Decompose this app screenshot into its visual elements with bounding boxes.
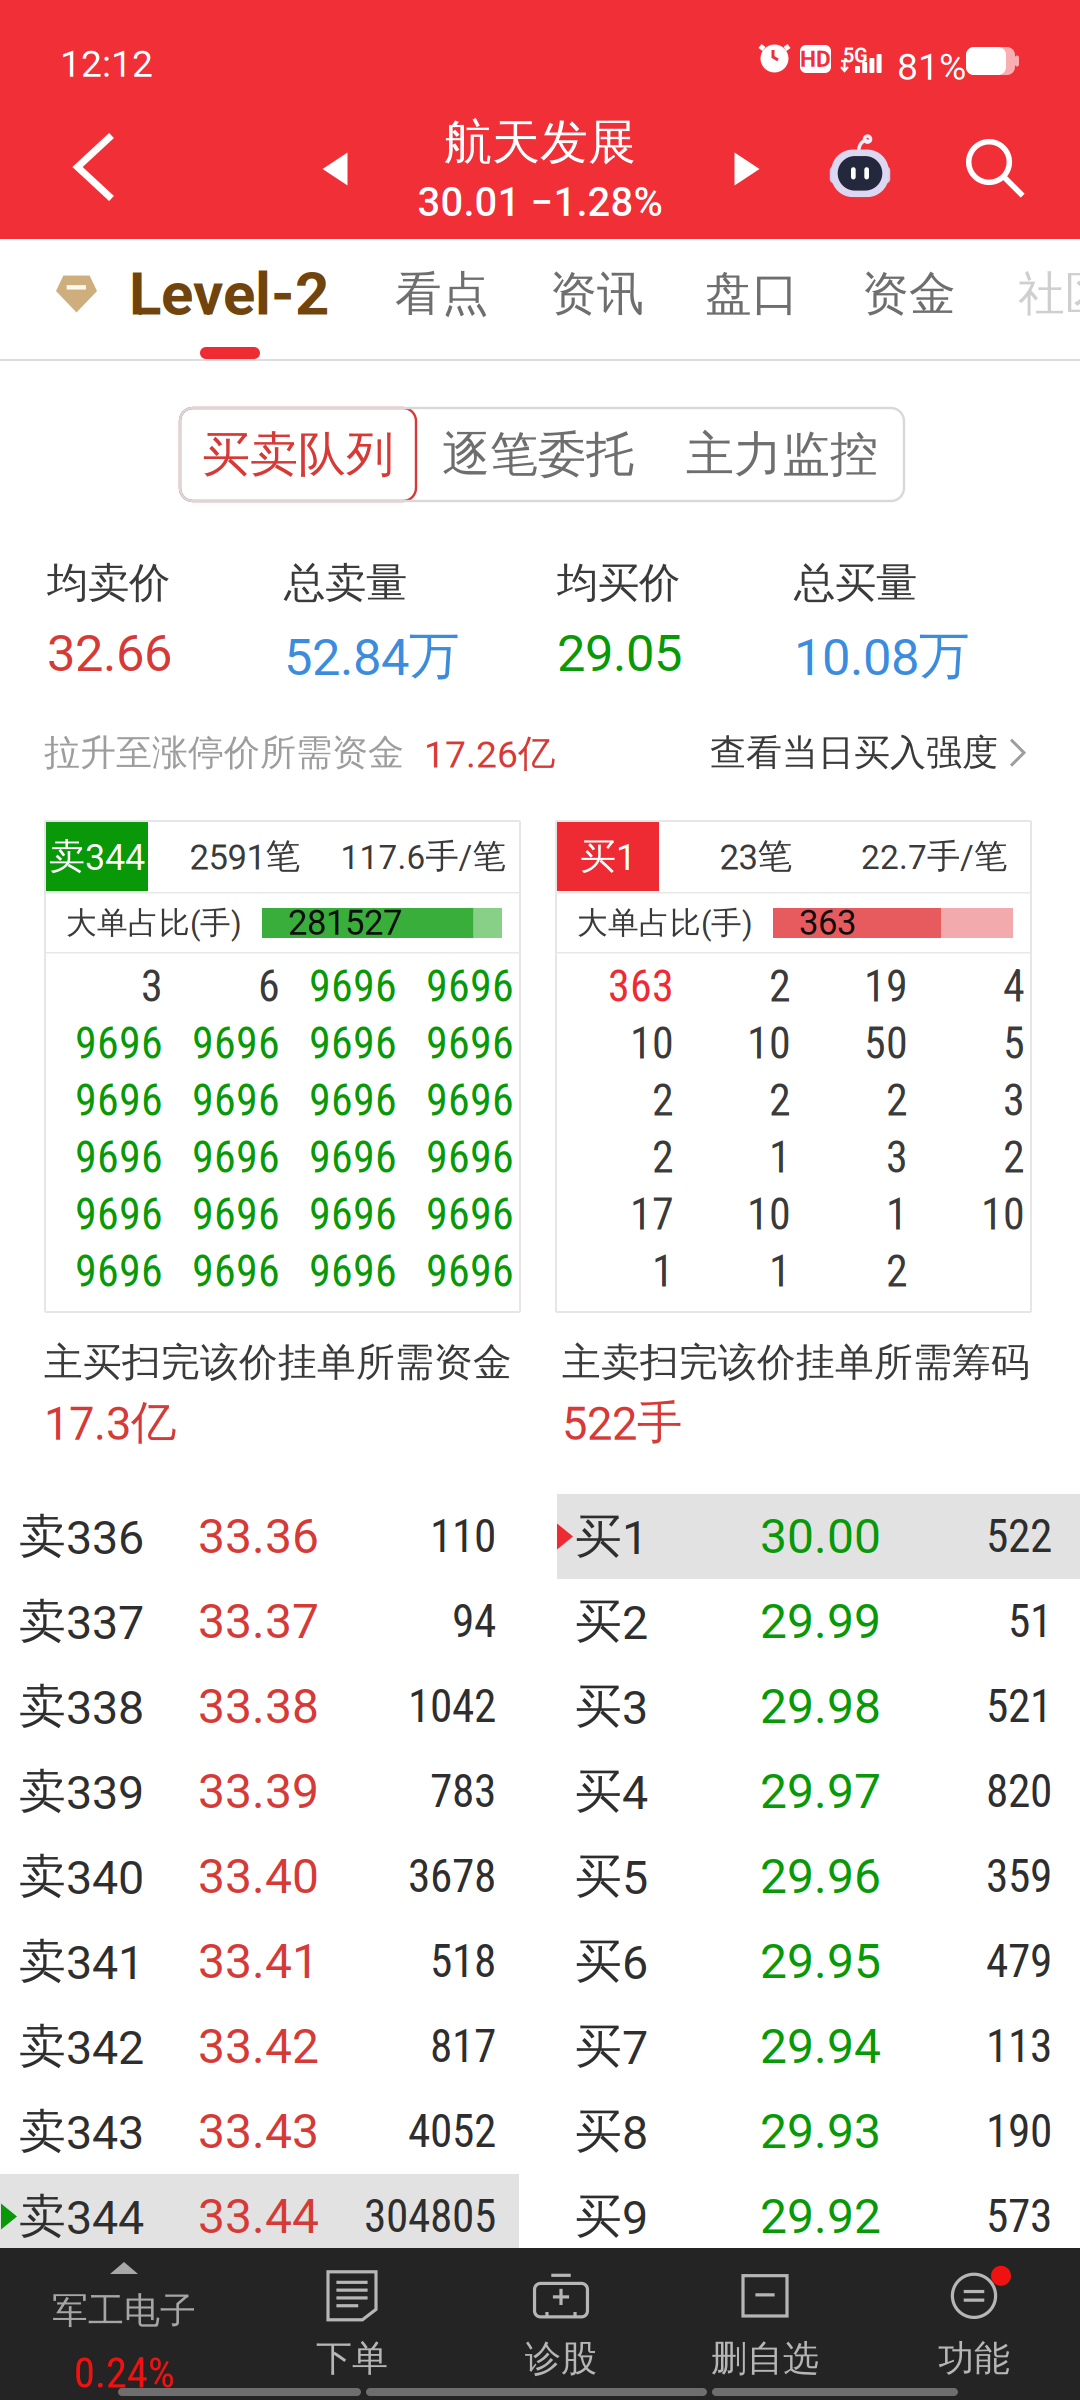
staticText: 5G (843, 44, 868, 67)
staticText: 33.37 (198, 1593, 319, 1650)
staticText: 卖339 (19, 1762, 144, 1821)
staticText: 逐笔委托 (442, 424, 634, 485)
button[interactable]: Search (941, 98, 1051, 240)
staticText: 359 (986, 1850, 1052, 1903)
button[interactable]: 功能 (874, 2248, 1074, 2400)
button[interactable]: 卖339 (0, 1749, 525, 1834)
staticText: 买7 (575, 2017, 648, 2076)
button[interactable]: Level-2 (0, 239, 359, 349)
staticText: 32.66 (47, 624, 172, 683)
staticText: 9696 (426, 1075, 514, 1126)
staticText: 3678 (408, 1850, 496, 1903)
button[interactable]: 盘口 (675, 239, 829, 349)
staticText: 9696 (75, 1132, 163, 1183)
staticText: 均买价 (557, 557, 680, 609)
button[interactable]: 买5 (557, 1834, 1080, 1919)
staticText: 10 (630, 1018, 674, 1069)
button[interactable]: 卖342 (0, 2004, 525, 2089)
staticText: 2591笔 (189, 835, 300, 878)
staticText: 281527 (288, 903, 402, 943)
button[interactable]: 军工电子 (9, 2248, 239, 2400)
button[interactable]: 买6 (557, 1919, 1080, 2004)
staticText: 23笔 (719, 835, 792, 878)
staticText: 卖338 (19, 1677, 144, 1736)
staticText: 2 (769, 1075, 791, 1126)
staticText: 社区 (1018, 265, 1080, 323)
button[interactable]: Back (20, 98, 170, 240)
button[interactable]: 主力监控 (660, 408, 904, 501)
button[interactable]: 买9 (557, 2174, 1080, 2259)
staticText: 9696 (309, 1246, 397, 1297)
button[interactable]: 买7 (557, 2004, 1080, 2089)
staticText: 2 (652, 1075, 674, 1126)
button[interactable]: 删自选 (665, 2248, 865, 2400)
button[interactable]: 卖337 (0, 1579, 525, 1664)
staticText: 9696 (309, 961, 397, 1012)
button[interactable]: 卖336 (0, 1494, 525, 1579)
button[interactable]: AI assistant (805, 98, 915, 240)
staticText: 783 (430, 1765, 496, 1818)
button[interactable]: 卖340 (0, 1834, 525, 1919)
button[interactable]: 买3 (557, 1664, 1080, 1749)
staticText: 1 (769, 1246, 791, 1297)
staticText: 卖337 (19, 1592, 144, 1651)
staticText: 29.05 (557, 624, 682, 683)
staticText: 删自选 (711, 2336, 819, 2381)
staticText: 12:12 (60, 42, 153, 86)
staticText: 9696 (309, 1075, 397, 1126)
staticText: 363 (799, 903, 856, 943)
staticText: 190 (986, 2105, 1052, 2158)
staticText: 117.6手/笔 (340, 835, 505, 877)
button[interactable]: 资金 (832, 239, 986, 349)
staticText: 买5 (575, 1847, 648, 1906)
button[interactable]: 看点 (365, 239, 519, 349)
button[interactable]: 买1 (557, 1494, 1080, 1579)
staticText: 主力监控 (686, 424, 878, 485)
staticText: 9696 (75, 1018, 163, 1069)
button[interactable]: 资讯 (520, 239, 674, 349)
staticText: 买1 (580, 834, 636, 879)
staticText: 29.98 (760, 1678, 881, 1735)
staticText: 22.7手/笔 (861, 835, 1007, 877)
button[interactable]: Next stock (702, 98, 792, 240)
staticText: 10 (747, 1189, 791, 1240)
staticText: 9696 (75, 1075, 163, 1126)
button[interactable]: 卖338 (0, 1664, 525, 1749)
button[interactable]: Previous stock (290, 98, 380, 240)
staticText: 3 (886, 1132, 908, 1183)
staticText: 9696 (309, 1132, 397, 1183)
button[interactable]: 买2 (557, 1579, 1080, 1664)
staticText: 9696 (192, 1132, 280, 1183)
staticText: 买8 (575, 2102, 648, 2161)
staticText: 33.43 (198, 2103, 319, 2160)
staticText: 军工电子 (52, 2288, 196, 2333)
staticText: 29.95 (760, 1933, 881, 1990)
button[interactable]: 逐笔委托 (416, 408, 660, 501)
staticText: 9696 (309, 1189, 397, 1240)
staticText: 9696 (192, 1246, 280, 1297)
staticText: 33.42 (198, 2018, 319, 2075)
staticText: 29.97 (760, 1763, 881, 1820)
staticText: 6 (258, 961, 280, 1012)
button[interactable]: 卖344 (0, 2174, 525, 2259)
button[interactable]: 买卖队列 (180, 408, 416, 501)
staticText: 81% (897, 45, 966, 89)
staticText: 10.08万 (794, 624, 970, 688)
staticText: 33.38 (198, 1678, 319, 1735)
button[interactable]: 买8 (557, 2089, 1080, 2174)
button[interactable]: 卖343 (0, 2089, 525, 2174)
button[interactable]: 查看当日买入强度 (710, 730, 1026, 775)
button[interactable]: 买4 (557, 1749, 1080, 1834)
staticText: 1042 (408, 1680, 496, 1733)
staticText: 2 (652, 1132, 674, 1183)
staticText: 航天发展 (444, 112, 636, 173)
staticText: 33.36 (198, 1508, 319, 1565)
button[interactable]: 诊股 (461, 2248, 661, 2400)
button[interactable]: 卖341 (0, 1919, 525, 2004)
button[interactable]: 社区 (988, 239, 1080, 349)
staticText: 卖343 (19, 2102, 144, 2161)
staticText: 52.84万 (284, 624, 460, 688)
staticText: 大单占比(手) (577, 904, 753, 942)
button[interactable]: 下单 (252, 2248, 452, 2400)
staticText: 33.41 (198, 1933, 319, 1990)
